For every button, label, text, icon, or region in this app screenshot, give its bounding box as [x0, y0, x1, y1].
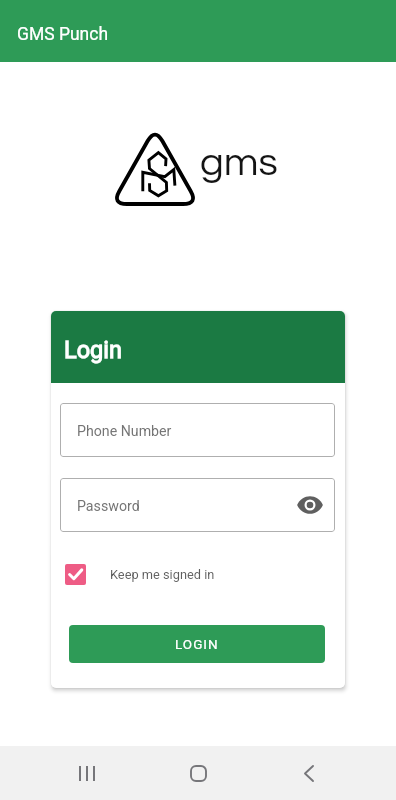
staticText: Phone Number — [77, 423, 172, 440]
staticText: Password — [77, 498, 140, 515]
staticText: Keep me signed in — [110, 567, 215, 582]
button[interactable]: LOGIN — [69, 625, 325, 663]
staticText: LOGIN — [175, 636, 219, 652]
button[interactable]: Show password — [297, 492, 323, 518]
button[interactable]: Recents — [60, 746, 114, 800]
button[interactable]: Back — [282, 746, 336, 800]
button[interactable]: Password — [60, 478, 335, 532]
staticText: Login — [64, 336, 122, 364]
button[interactable]: Home — [171, 746, 225, 800]
button[interactable]: Keep me signed in — [65, 564, 215, 585]
staticText: GMS Punch — [17, 24, 109, 45]
staticText: gms — [200, 142, 278, 183]
button[interactable]: Phone Number — [60, 403, 335, 457]
